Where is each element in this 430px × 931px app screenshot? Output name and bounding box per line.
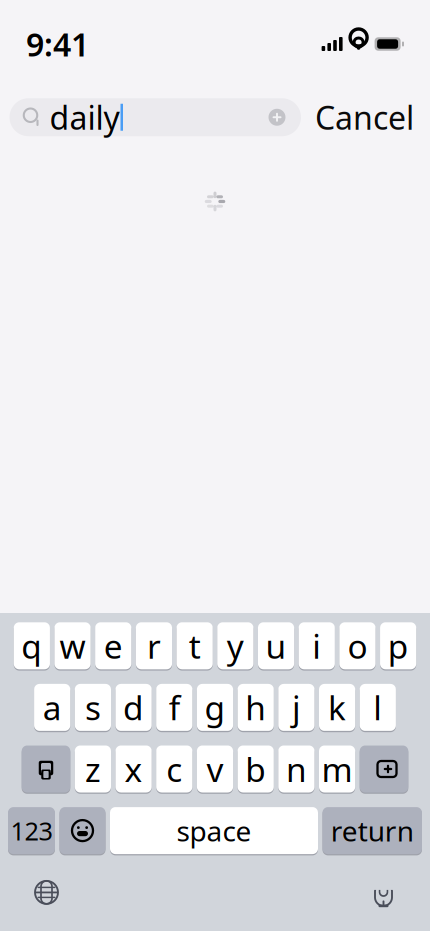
- staticText: m: [322, 747, 353, 791]
- button[interactable]: l: [360, 683, 396, 732]
- button[interactable]: u: [258, 621, 294, 671]
- staticText: Cancel: [315, 96, 414, 138]
- staticText: o: [347, 624, 367, 668]
- button[interactable]: p: [380, 621, 416, 671]
- staticText: b: [245, 747, 266, 791]
- button[interactable]: 123: [8, 806, 55, 855]
- staticText: q: [21, 624, 42, 668]
- button[interactable]: d: [115, 683, 152, 732]
- button[interactable]: e: [95, 621, 131, 671]
- button[interactable]: w: [54, 621, 91, 671]
- staticText: space: [176, 812, 251, 849]
- staticText: h: [245, 685, 266, 730]
- staticText: 9:41: [26, 23, 89, 65]
- button[interactable]: a: [34, 683, 70, 732]
- staticText: g: [204, 685, 225, 730]
- staticText: s: [85, 685, 101, 730]
- staticText: n: [286, 747, 307, 791]
- staticText: d: [123, 685, 144, 730]
- button[interactable]: Cancel: [301, 88, 420, 146]
- staticText: z: [85, 747, 101, 791]
- button[interactable]: z: [75, 744, 111, 794]
- staticText: r: [147, 624, 161, 668]
- button[interactable]: v: [197, 744, 233, 794]
- button[interactable]: s: [75, 683, 111, 732]
- staticText: c: [166, 747, 182, 791]
- button[interactable]: Dictation: [359, 865, 408, 919]
- button[interactable]: y: [217, 621, 253, 671]
- staticText: 123: [10, 814, 52, 847]
- button[interactable]: f: [156, 683, 192, 732]
- staticText: u: [266, 624, 287, 668]
- button[interactable]: h: [238, 683, 274, 732]
- button[interactable]: b: [238, 744, 274, 794]
- button[interactable]: m: [319, 744, 355, 794]
- staticText: i: [312, 624, 321, 668]
- staticText: y: [227, 624, 244, 668]
- staticText: return: [331, 812, 414, 849]
- button[interactable]: q: [14, 621, 50, 671]
- button[interactable]: x: [115, 744, 152, 794]
- staticText: p: [388, 624, 409, 668]
- button[interactable]: i: [299, 621, 335, 671]
- button[interactable]: Clear search text: [261, 100, 293, 134]
- staticText: f: [169, 685, 180, 730]
- button[interactable]: Emoji: [59, 806, 105, 855]
- staticText: e: [104, 624, 123, 668]
- button[interactable]: o: [339, 621, 376, 671]
- button[interactable]: j: [278, 683, 314, 732]
- button[interactable]: g: [197, 683, 233, 732]
- staticText: t: [189, 624, 201, 668]
- staticText: daily: [49, 96, 119, 138]
- button[interactable]: return: [322, 806, 422, 855]
- staticText: k: [328, 685, 346, 730]
- button[interactable]: r: [136, 621, 172, 671]
- button[interactable]: Shift: [22, 744, 70, 794]
- staticText: j: [292, 685, 301, 730]
- button[interactable]: n: [278, 744, 314, 794]
- button[interactable]: k: [319, 683, 355, 732]
- button[interactable]: Delete: [360, 744, 408, 794]
- staticText: v: [206, 747, 223, 791]
- button[interactable]: c: [156, 744, 192, 794]
- staticText: x: [125, 747, 143, 791]
- button[interactable]: space: [110, 806, 318, 855]
- button[interactable]: Next keyboard: [22, 868, 71, 917]
- staticText: w: [60, 624, 86, 668]
- button[interactable]: t: [177, 621, 213, 671]
- staticText: l: [373, 685, 382, 730]
- staticText: a: [43, 685, 62, 730]
